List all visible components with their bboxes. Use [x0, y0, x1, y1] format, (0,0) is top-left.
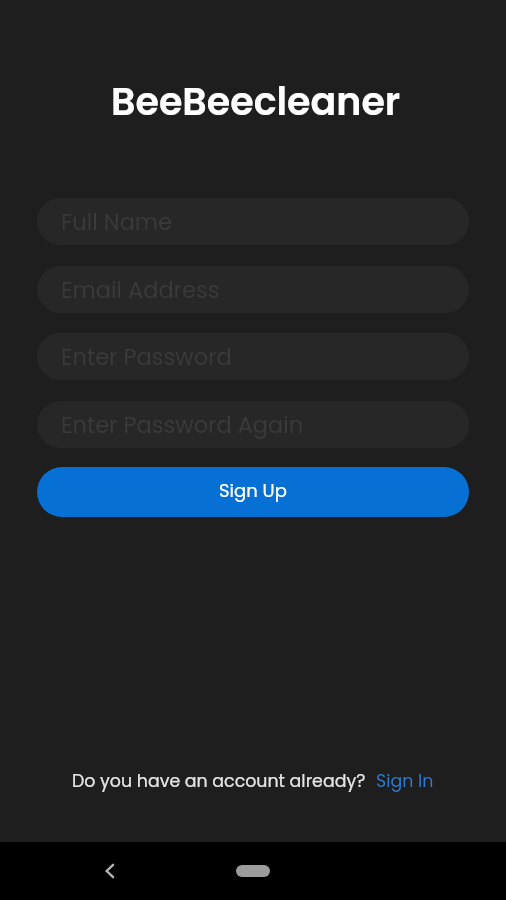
button[interactable]: Sign In [376, 769, 434, 793]
staticText: BeeBeecleaner [111, 75, 401, 128]
button[interactable]: Back [88, 849, 132, 893]
button[interactable]: Sign Up [37, 467, 469, 517]
staticText: Do you have an account already? [72, 769, 366, 793]
button[interactable]: Enter Password [37, 333, 469, 380]
button[interactable]: Enter Password Again [37, 401, 469, 448]
button[interactable]: Home [236, 865, 270, 877]
button[interactable]: Email Address [37, 266, 469, 313]
staticText: Sign Up [219, 478, 287, 503]
staticText: Email Address [61, 274, 220, 305]
button[interactable]: Full Name [37, 198, 469, 245]
staticText: Enter Password Again [61, 409, 304, 440]
staticText: Enter Password [61, 341, 232, 372]
staticText: Full Name [61, 206, 172, 237]
staticText: Sign In [376, 769, 434, 793]
